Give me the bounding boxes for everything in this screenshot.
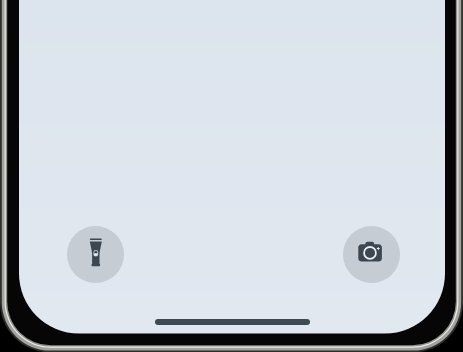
button[interactable] (155, 319, 310, 325)
button[interactable] (67, 226, 124, 283)
button[interactable] (343, 226, 400, 283)
